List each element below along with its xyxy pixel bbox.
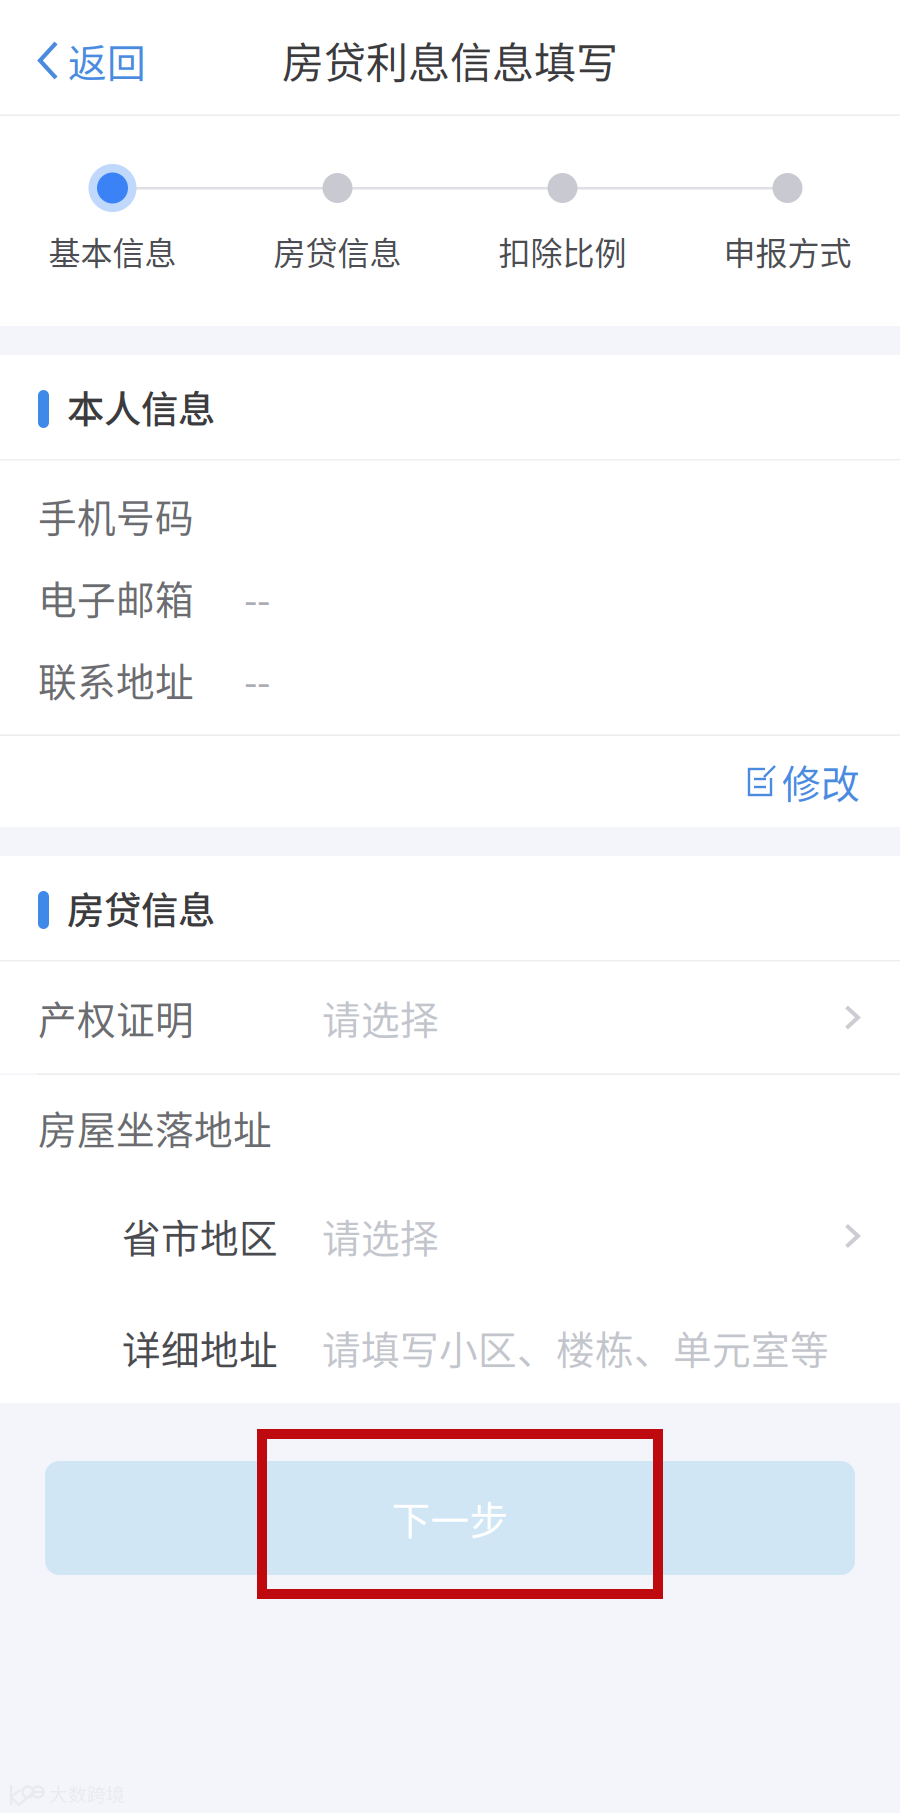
staticText: --: [244, 569, 270, 625]
button[interactable]: 产权证明: [0, 961, 900, 1073]
staticText: 大数跨境: [49, 1780, 125, 1807]
staticText: 房贷信息: [67, 881, 215, 935]
staticText: 房屋坐落地址: [38, 1099, 272, 1155]
staticText: 修改: [782, 753, 860, 809]
staticText: 返回: [68, 32, 146, 88]
button[interactable]: 详细地址: [0, 1292, 900, 1403]
staticText: 扣除比例: [498, 228, 626, 274]
staticText: 联系地址: [38, 651, 194, 707]
staticText: 申报方式: [723, 228, 851, 274]
staticText: 手机号码: [38, 487, 194, 543]
staticText: 房贷利息信息填写: [282, 29, 618, 90]
staticText: 省市地区: [122, 1208, 278, 1264]
staticText: 房贷信息: [273, 228, 401, 274]
staticText: 下一步: [391, 1490, 508, 1546]
staticText: 本人信息: [67, 380, 215, 434]
staticText: 基本信息: [48, 228, 176, 274]
staticText: 请选择: [322, 1208, 439, 1264]
staticText: 电子邮箱: [38, 569, 194, 625]
button[interactable]: 省市地区: [0, 1180, 900, 1292]
staticText: 请选择: [322, 989, 439, 1045]
staticText: 请填写小区、楼栋、单元室等: [322, 1319, 829, 1375]
staticText: --: [244, 651, 270, 707]
button[interactable]: 修改: [723, 736, 900, 827]
staticText: 产权证明: [38, 989, 194, 1045]
staticText: 详细地址: [122, 1319, 278, 1375]
button[interactable]: 返回: [0, 3, 170, 117]
button[interactable]: 下一步: [45, 1461, 855, 1575]
